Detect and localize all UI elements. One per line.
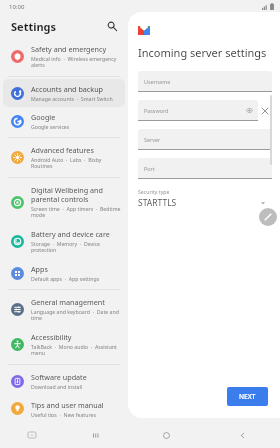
button[interactable]: Password bbox=[138, 100, 258, 121]
staticText: Server bbox=[144, 136, 161, 143]
button[interactable]: Keyboard bbox=[0, 422, 64, 448]
staticText: Manage accounts · Smart Switch bbox=[31, 95, 113, 102]
staticText: Language and keyboard · Date and time bbox=[31, 308, 122, 322]
button[interactable]: Clear bbox=[258, 104, 272, 118]
staticText: Safety and emergency bbox=[31, 44, 107, 54]
button[interactable]: Back bbox=[204, 422, 280, 448]
staticText: Google bbox=[31, 112, 56, 122]
staticText: Medical info · Wireless emergency alerts bbox=[31, 55, 122, 69]
button[interactable]: Digital Wellbeing and parental controls bbox=[0, 180, 128, 224]
staticText: Security type bbox=[138, 188, 170, 195]
staticText: Google services bbox=[31, 123, 70, 130]
staticText: Digital Wellbeing and parental controls bbox=[31, 185, 122, 204]
button[interactable]: Recents bbox=[64, 422, 128, 448]
button[interactable]: Software update bbox=[0, 367, 128, 395]
staticText: Advanced features bbox=[31, 145, 94, 155]
staticText: Storage · Memory · Device protection bbox=[31, 240, 122, 254]
button[interactable]: Search bbox=[104, 18, 120, 34]
staticText: Default apps · App settings bbox=[31, 275, 100, 282]
button[interactable]: Tips and user manual bbox=[0, 395, 128, 422]
staticText: NEXT bbox=[239, 392, 256, 401]
staticText: STARTTLS bbox=[138, 197, 177, 209]
button[interactable]: Google bbox=[0, 107, 128, 135]
staticText: TalkBack · Mono audio · Assistant menu bbox=[31, 343, 122, 357]
staticText: Battery and device care bbox=[31, 229, 110, 239]
staticText: Apps bbox=[31, 264, 48, 274]
staticText: Download and install bbox=[31, 383, 83, 390]
button[interactable]: Server bbox=[138, 129, 272, 150]
staticText: Accessibility bbox=[31, 332, 72, 342]
staticText: Settings bbox=[11, 19, 57, 34]
button[interactable]: Edit bbox=[259, 208, 277, 226]
staticText: Software update bbox=[31, 372, 87, 382]
button[interactable]: Accounts and backup bbox=[3, 79, 125, 107]
staticText: Android Auto · Labs · Bixby Routines bbox=[31, 156, 122, 170]
button[interactable]: General management bbox=[0, 292, 128, 327]
staticText: Port bbox=[144, 165, 155, 172]
button[interactable]: Battery and device care bbox=[0, 224, 128, 259]
staticText: Incoming server settings bbox=[138, 45, 267, 60]
staticText: Screen time · App timers · Bedtime mode bbox=[31, 205, 122, 219]
staticText: Accounts and backup bbox=[31, 84, 103, 94]
staticText: Password bbox=[144, 107, 169, 114]
staticText: Tips and user manual bbox=[31, 400, 104, 410]
button[interactable]: Apps bbox=[0, 259, 128, 287]
button[interactable]: Accessibility bbox=[0, 327, 128, 362]
button[interactable]: Username bbox=[138, 71, 272, 92]
staticText: 10:00 bbox=[9, 3, 25, 11]
button[interactable]: Advanced features bbox=[0, 140, 128, 175]
button[interactable]: Port bbox=[138, 158, 272, 179]
button[interactable]: Security type bbox=[138, 188, 272, 209]
button[interactable]: NEXT bbox=[227, 387, 268, 406]
staticText: Username bbox=[144, 78, 171, 85]
button[interactable]: Home bbox=[128, 422, 204, 448]
staticText: Useful tips · New features bbox=[31, 411, 96, 417]
staticText: General management bbox=[31, 297, 105, 307]
button[interactable]: Safety and emergency bbox=[0, 39, 128, 74]
